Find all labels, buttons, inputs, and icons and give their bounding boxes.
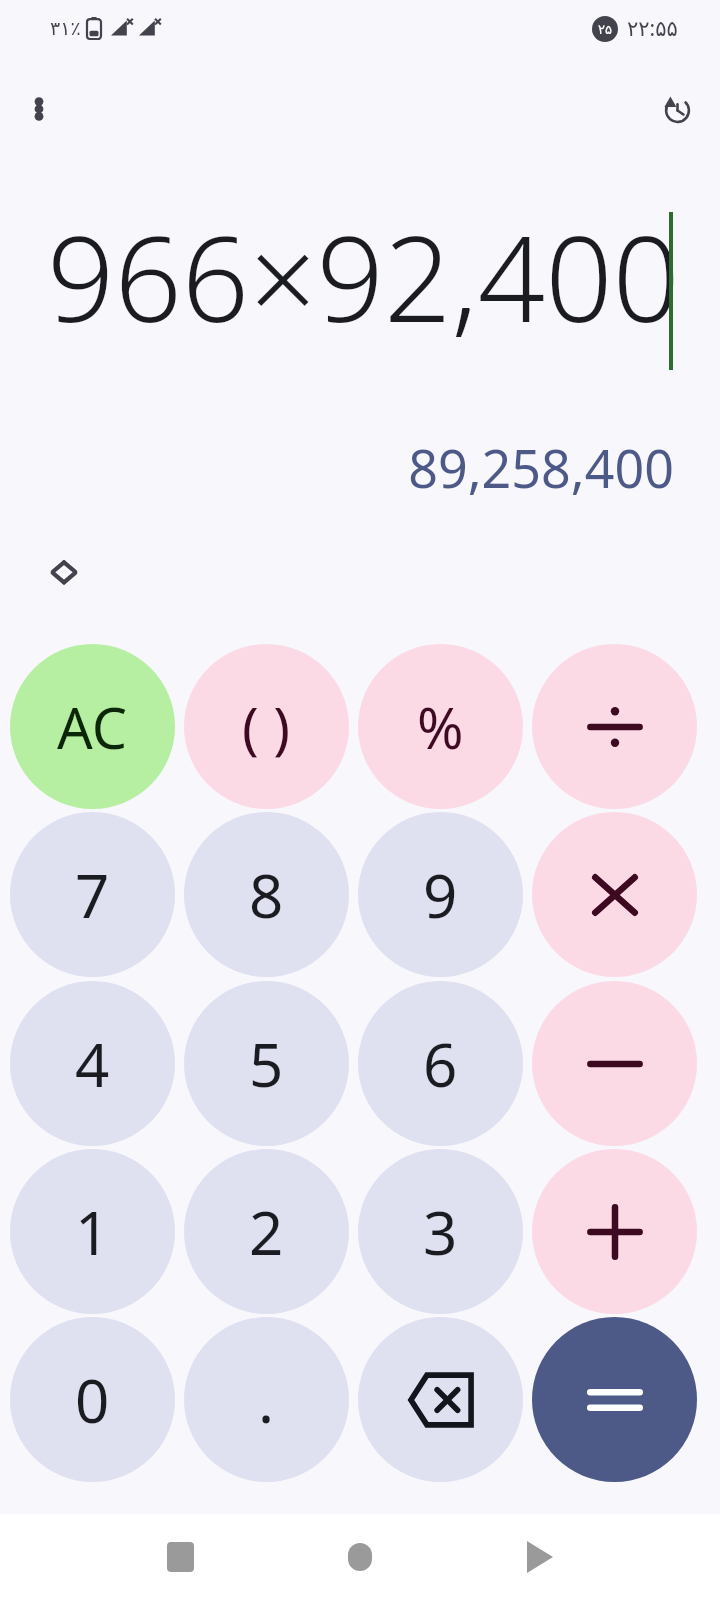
staticText: %	[417, 689, 464, 765]
staticText: 89,258,400	[408, 432, 674, 503]
button[interactable]: Back	[450, 1514, 630, 1600]
button[interactable]: .	[184, 1317, 349, 1482]
button[interactable]: Expand	[32, 540, 96, 604]
staticText: 7	[75, 854, 110, 936]
button[interactable]: Multiply	[532, 812, 697, 977]
staticText: 3	[423, 1191, 458, 1273]
button[interactable]: Home	[270, 1514, 450, 1600]
button[interactable]: Add	[532, 1149, 697, 1314]
staticText: ۳۱٪	[50, 17, 81, 39]
button[interactable]: Equals	[532, 1317, 697, 1482]
button[interactable]: 0	[10, 1317, 175, 1482]
staticText: 0	[75, 1359, 110, 1441]
button[interactable]: 1	[10, 1149, 175, 1314]
staticText: 6	[423, 1023, 458, 1105]
button[interactable]: 7	[10, 812, 175, 977]
staticText: ۲۵	[598, 22, 612, 37]
button[interactable]: 4	[10, 981, 175, 1146]
button[interactable]: ( )	[184, 644, 349, 809]
staticText: 966×92,400	[47, 196, 680, 357]
staticText: 4	[75, 1023, 110, 1105]
button[interactable]: History	[652, 85, 700, 133]
button[interactable]: 5	[184, 981, 349, 1146]
button[interactable]: Divide	[532, 644, 697, 809]
staticText: ۲۲:۵۵	[627, 14, 678, 43]
staticText: ( )	[242, 689, 291, 765]
staticText: 5	[249, 1023, 284, 1105]
button[interactable]: Recent apps	[90, 1514, 270, 1600]
staticText: 1	[75, 1191, 110, 1273]
button[interactable]: 8	[184, 812, 349, 977]
button[interactable]: 2	[184, 1149, 349, 1314]
button[interactable]: 9	[358, 812, 523, 977]
button[interactable]: Backspace	[358, 1317, 523, 1482]
staticText: AC	[57, 689, 128, 765]
button[interactable]: %	[358, 644, 523, 809]
button[interactable]: More options	[15, 85, 63, 133]
staticText: 2	[249, 1191, 284, 1273]
button[interactable]: AC	[10, 644, 175, 809]
staticText: 9	[423, 854, 458, 936]
button[interactable]: 3	[358, 1149, 523, 1314]
staticText: .	[258, 1359, 275, 1441]
button[interactable]: Subtract	[532, 981, 697, 1146]
button[interactable]: 6	[358, 981, 523, 1146]
staticText: 8	[249, 854, 284, 936]
